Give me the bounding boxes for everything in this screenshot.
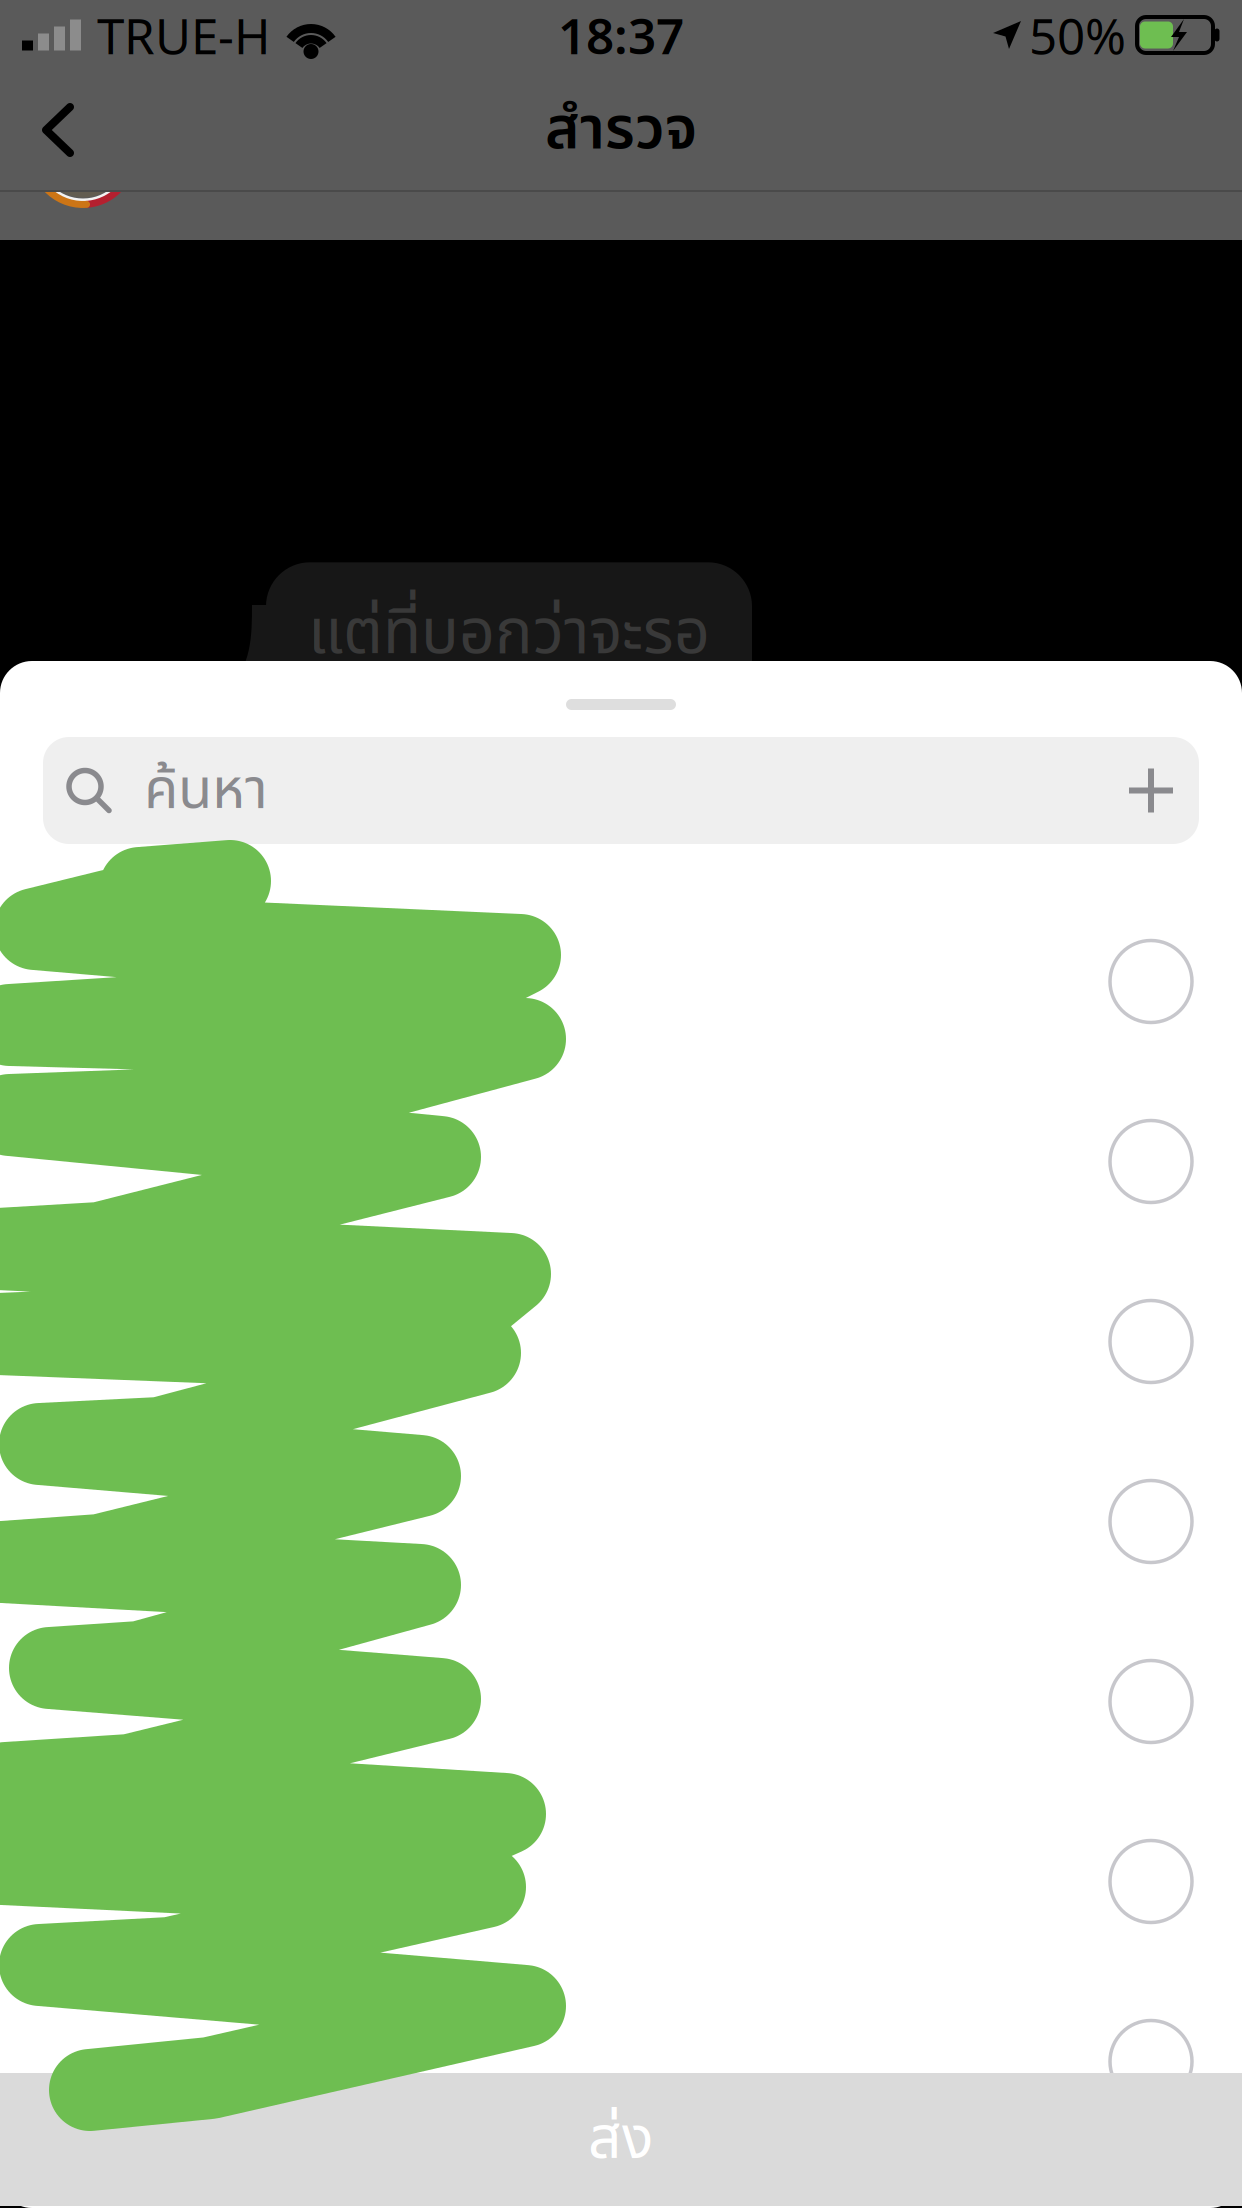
button[interactable]: Select recipient — [0, 1971, 1242, 2151]
button[interactable]: Select recipient — [0, 1431, 1242, 1611]
button[interactable]: Select recipient — [0, 891, 1242, 1071]
staticText: ส่ง — [588, 2095, 654, 2184]
staticText: ค้นหา — [144, 748, 268, 833]
button[interactable]: Add — [1103, 737, 1199, 844]
button[interactable]: Select recipient — [0, 1611, 1242, 1791]
button[interactable]: Back — [0, 70, 116, 190]
button[interactable]: ส่ง — [0, 2073, 1242, 2206]
staticText: สำรวจ — [545, 86, 697, 174]
button[interactable]: Select recipient — [0, 1251, 1242, 1431]
button[interactable]: Select recipient — [0, 1071, 1242, 1251]
button[interactable]: Select recipient — [0, 1791, 1242, 1971]
staticText: 50% — [1029, 2, 1126, 68]
staticText: แต่ที่บอกว่าจะรอ — [308, 586, 710, 681]
staticText: 18:37 — [558, 2, 684, 68]
staticText: TRUE-H — [97, 2, 271, 68]
